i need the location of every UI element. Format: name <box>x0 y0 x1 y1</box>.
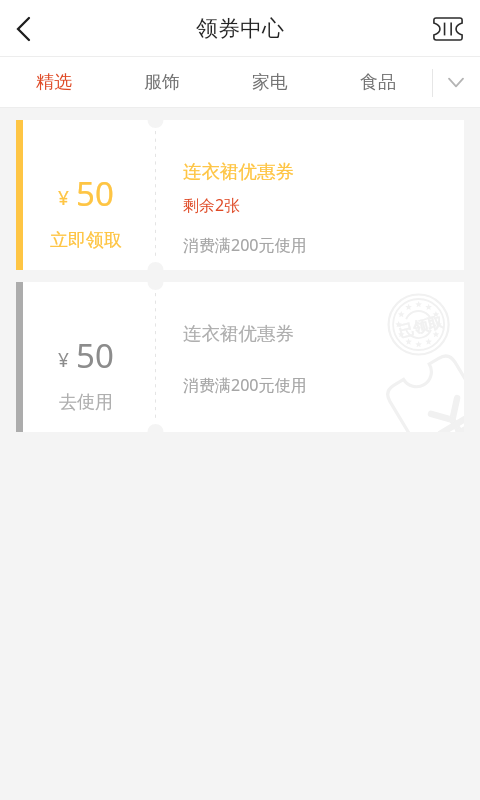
button[interactable]: 精选 <box>0 57 108 108</box>
button[interactable]: 家电 <box>216 57 324 108</box>
staticText: ¥ <box>58 185 69 211</box>
staticText: 服饰 <box>144 71 180 94</box>
button[interactable]: 已领取 <box>16 282 464 432</box>
staticText: 去使用 <box>59 391 113 414</box>
staticText: 剩余2张 <box>183 194 241 216</box>
staticText: 50 <box>76 333 114 378</box>
button[interactable]: Back <box>0 0 46 57</box>
staticText: 消费满200元使用 <box>183 234 307 256</box>
staticText: 连衣裙优惠券 <box>183 322 294 345</box>
staticText: 立即领取 <box>50 229 122 252</box>
staticText: 家电 <box>252 71 288 94</box>
staticText: 50 <box>76 171 114 216</box>
staticText: 连衣裙优惠券 <box>183 160 294 183</box>
staticText: 精选 <box>36 71 72 94</box>
button[interactable]: 服饰 <box>108 57 216 108</box>
button[interactable]: My coupons <box>416 0 480 57</box>
staticText: 消费满200元使用 <box>183 374 307 396</box>
staticText: 已领取 <box>396 313 445 342</box>
button[interactable]: 食品 <box>324 57 432 108</box>
staticText: 领券中心 <box>196 15 284 43</box>
button[interactable]: More categories <box>432 57 480 108</box>
staticText: ¥ <box>58 347 69 373</box>
staticText: 食品 <box>360 71 396 94</box>
button[interactable]: ¥ <box>16 120 464 270</box>
